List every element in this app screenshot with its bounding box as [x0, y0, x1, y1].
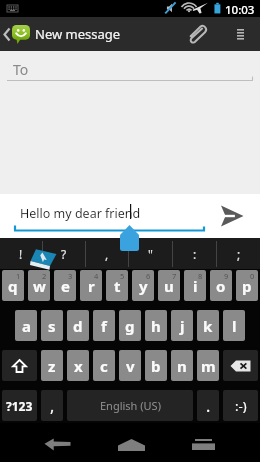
button[interactable]: b: [145, 350, 167, 381]
staticText: To: [13, 60, 29, 79]
button[interactable]: .: [197, 390, 219, 421]
button[interactable]: g: [119, 310, 141, 341]
button[interactable]: y: [132, 270, 154, 301]
button[interactable]: Send: [216, 194, 248, 238]
staticText: i: [193, 276, 198, 296]
button[interactable]: Backspace: [223, 350, 258, 381]
staticText: English (US): [100, 398, 161, 413]
staticText: ;: [237, 246, 241, 262]
staticText: ,: [105, 246, 109, 262]
staticText: t: [114, 276, 121, 296]
staticText: u: [164, 276, 174, 296]
button[interactable]: h: [145, 310, 167, 341]
staticText: 2: [42, 271, 47, 281]
staticText: b: [151, 356, 161, 376]
button[interactable]: :-): [223, 390, 258, 421]
staticText: j: [180, 316, 185, 336]
staticText: Hello my dear friend: [20, 205, 141, 222]
staticText: m: [201, 356, 216, 376]
button[interactable]: q: [2, 270, 24, 301]
button[interactable]: d: [67, 310, 89, 341]
button[interactable]: x: [67, 350, 89, 381]
staticText: ": [148, 246, 153, 262]
button[interactable]: e: [54, 270, 76, 301]
button[interactable]: k: [197, 310, 219, 341]
staticText: l: [232, 316, 237, 336]
staticText: a: [22, 316, 31, 336]
button[interactable]: :: [173, 238, 216, 269]
button[interactable]: ;: [217, 238, 260, 269]
staticText: k: [203, 316, 213, 336]
button[interactable]: ?: [43, 238, 85, 269]
staticText: r: [88, 276, 95, 296]
button[interactable]: Shift: [2, 350, 37, 381]
button[interactable]: Navigate up: [0, 17, 121, 51]
staticText: 1: [16, 271, 21, 281]
button[interactable]: ": [129, 238, 172, 269]
staticText: s: [48, 316, 56, 336]
staticText: ?: [61, 246, 67, 262]
button[interactable]: Home: [98, 425, 164, 462]
staticText: c: [100, 356, 108, 376]
button[interactable]: i: [184, 270, 206, 301]
staticText: g: [125, 316, 135, 336]
staticText: :-): [235, 397, 247, 415]
staticText: ?123: [6, 398, 33, 414]
staticText: 0: [250, 271, 255, 281]
staticText: x: [74, 356, 83, 376]
button[interactable]: l: [223, 310, 245, 341]
button[interactable]: p: [236, 270, 258, 301]
button[interactable]: Attach: [179, 17, 212, 51]
button[interactable]: s: [41, 310, 63, 341]
button[interactable]: n: [171, 350, 193, 381]
button[interactable]: u: [158, 270, 180, 301]
staticText: .: [206, 395, 211, 417]
button[interactable]: !: [0, 238, 42, 269]
button[interactable]: w: [28, 270, 50, 301]
staticText: 5: [120, 271, 125, 281]
staticText: w: [33, 276, 46, 296]
staticText: z: [48, 356, 56, 376]
button[interactable]: Recent apps: [170, 425, 236, 462]
staticText: y: [139, 276, 148, 296]
staticText: :: [193, 246, 197, 262]
staticText: v: [126, 356, 135, 376]
staticText: 10:03: [225, 2, 255, 18]
button[interactable]: English (US): [67, 390, 193, 421]
staticText: o: [216, 276, 226, 296]
staticText: q: [8, 276, 18, 296]
button[interactable]: o: [210, 270, 232, 301]
staticText: d: [73, 316, 83, 336]
staticText: 7: [172, 271, 177, 281]
button[interactable]: Back: [24, 425, 90, 462]
staticText: ,: [50, 395, 55, 417]
staticText: f: [101, 316, 107, 336]
button[interactable]: a: [15, 310, 37, 341]
staticText: p: [242, 276, 252, 296]
button[interactable]: ,: [86, 238, 128, 269]
button[interactable]: m: [197, 350, 219, 381]
button[interactable]: r: [80, 270, 102, 301]
staticText: New message: [35, 25, 121, 43]
staticText: 9: [224, 271, 229, 281]
button[interactable]: c: [93, 350, 115, 381]
staticText: h: [151, 316, 161, 336]
button[interactable]: v: [119, 350, 141, 381]
staticText: 6: [146, 271, 151, 281]
staticText: n: [177, 356, 187, 376]
staticText: 3: [68, 271, 73, 281]
button[interactable]: More options: [226, 17, 254, 51]
staticText: e: [61, 276, 70, 296]
staticText: !: [19, 246, 23, 262]
button[interactable]: ,: [41, 390, 63, 421]
staticText: 4: [94, 271, 99, 281]
button[interactable]: j: [171, 310, 193, 341]
button[interactable]: z: [41, 350, 63, 381]
button[interactable]: ?123: [2, 390, 37, 421]
staticText: 8: [198, 271, 203, 281]
button[interactable]: t: [106, 270, 128, 301]
button[interactable]: f: [93, 310, 115, 341]
